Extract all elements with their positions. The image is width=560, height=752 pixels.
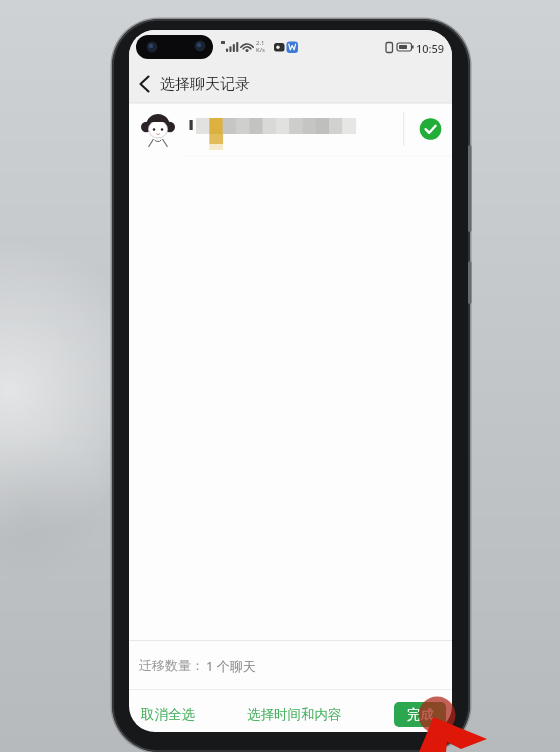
button[interactable]: 选择时间和内容 [242, 701, 346, 727]
staticText: 完成 [407, 706, 434, 723]
button[interactable] [129, 103, 452, 156]
staticText: 取消全选 [141, 706, 195, 723]
staticText: 10:59 [416, 41, 445, 56]
button[interactable]: 完成 [394, 702, 446, 727]
staticText: 迁移数量： [139, 657, 204, 673]
staticText: 2.1 [256, 39, 265, 47]
button[interactable] [133, 70, 161, 98]
button[interactable]: 取消全选 [137, 701, 199, 727]
staticText: 1 个聊天 [206, 657, 256, 675]
staticText: 选择聊天记录 [160, 75, 250, 94]
staticText: K/s [256, 46, 265, 54]
staticText: 选择时间和内容 [247, 706, 342, 723]
